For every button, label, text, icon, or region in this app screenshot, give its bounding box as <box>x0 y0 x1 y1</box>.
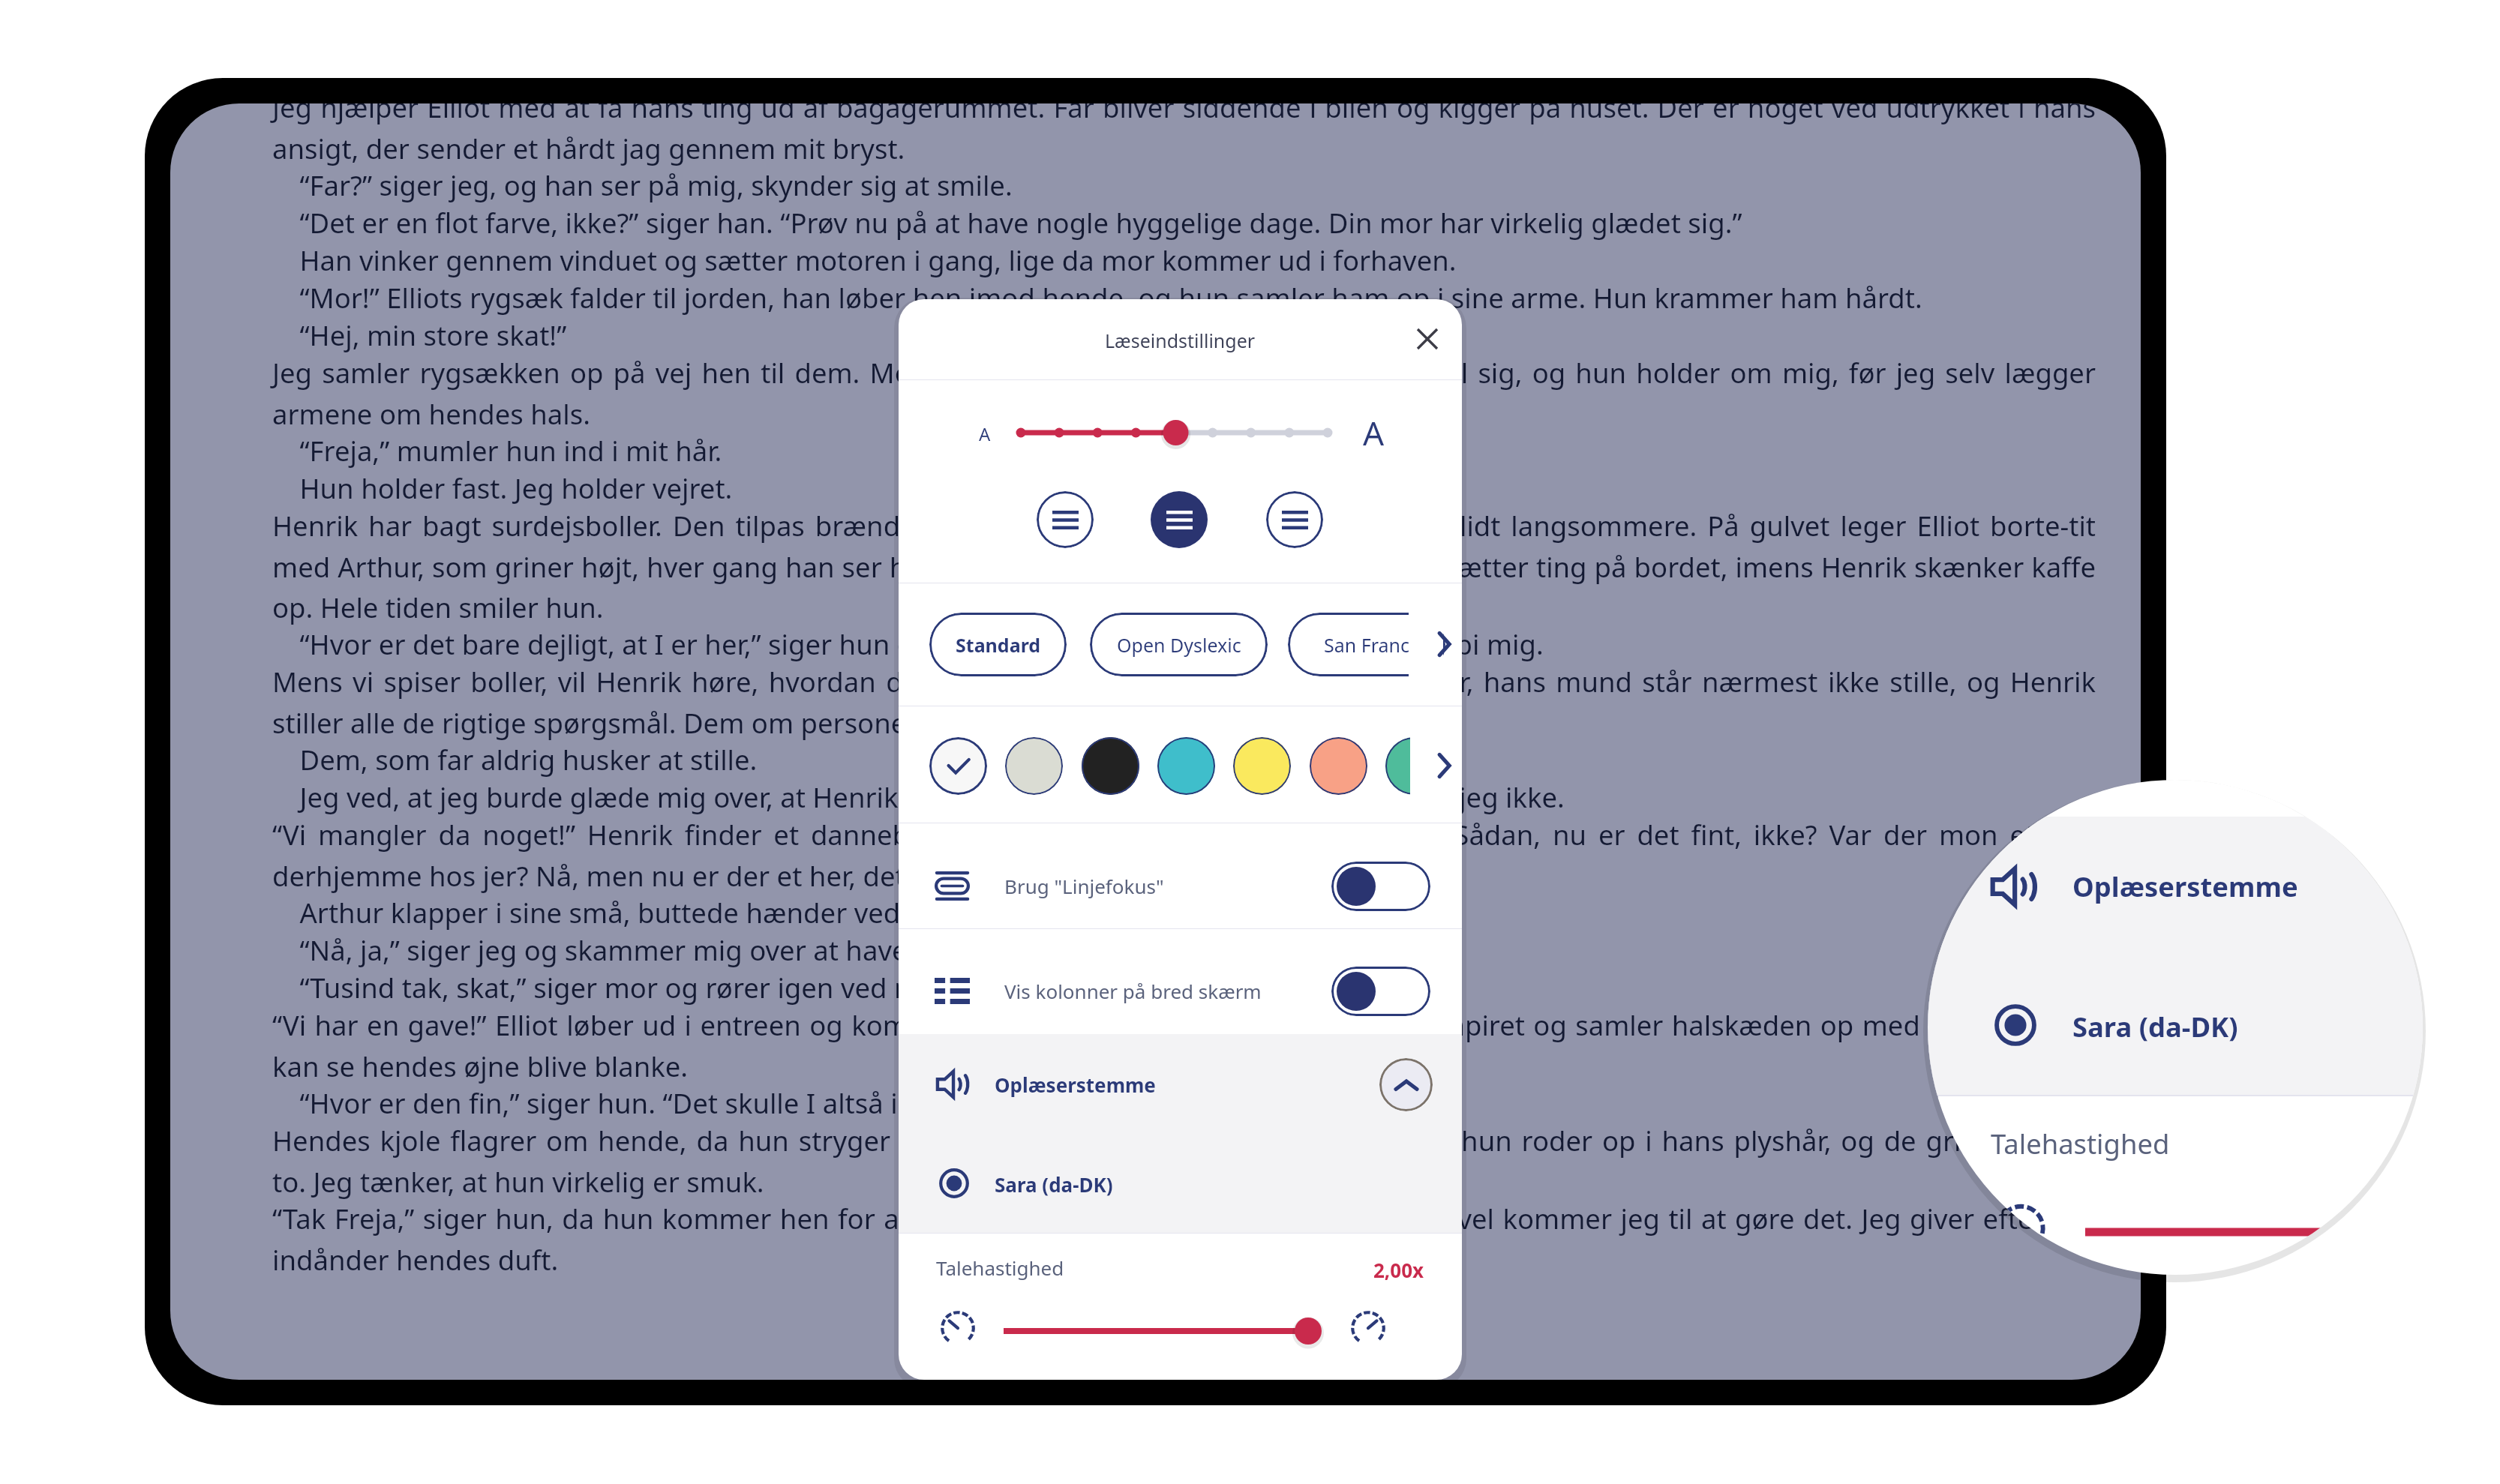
staticText: “Freja,” mumler hun ind i mit hår. <box>272 432 722 469</box>
staticText: “Mor!” Elliots rygsæk falder til jorden,… <box>272 279 1922 316</box>
button[interactable]: Vis flere <box>1427 749 1460 782</box>
staticText: “Hvor er den fin,” siger hun. “Det skull… <box>272 1084 1097 1122</box>
button[interactable]: Standard <box>929 613 1067 676</box>
button[interactable]: San Franc <box>1288 613 1445 676</box>
staticText: Vis kolonner på bred skærm <box>1004 978 1262 1004</box>
button[interactable]: Baggrundsfarve <box>929 737 987 795</box>
staticText: Sara (da-DK) <box>995 1171 1113 1198</box>
staticText: A <box>1363 410 1385 454</box>
staticText: A <box>979 421 991 446</box>
staticText: Henrik har bagt surdejsboller. Den tilpa… <box>272 507 2096 625</box>
button[interactable]: Centreret tekst <box>1151 491 1208 548</box>
staticText: 2,00x <box>1373 1257 1424 1283</box>
staticText: Jeg hjælper Elliot med at få hans ting u… <box>272 103 2096 166</box>
button[interactable]: Tekstjustering <box>1037 491 1094 548</box>
button[interactable]: Vis flere <box>1427 628 1460 661</box>
staticText: “Vi har en gave!” Elliot løber ud i entr… <box>272 1006 2096 1084</box>
button[interactable]: Slå til/fra <box>1331 862 1430 911</box>
button[interactable]: Baggrundsfarve <box>1310 737 1367 795</box>
staticText: Talehastighed <box>936 1255 1064 1281</box>
staticText: Hun holder fast. Jeg holder vejret. <box>272 469 733 507</box>
staticText: Han vinker gennem vinduet og sætter moto… <box>272 241 1457 279</box>
button[interactable] <box>1928 780 2423 815</box>
button[interactable]: Baggrundsfarve <box>1005 737 1063 795</box>
staticText: Mens vi spiser boller, vil Henrik høre, … <box>272 663 2096 741</box>
staticText: “Tusind tak, skat,” siger mor og rører i… <box>272 969 1289 1006</box>
staticText: San Franc <box>1324 632 1409 658</box>
button[interactable]: Luk <box>1403 314 1452 364</box>
button[interactable]: Baggrundsfarve <box>1233 737 1291 795</box>
button[interactable] <box>1928 817 2423 958</box>
staticText: “Hej, min store skat!” <box>272 316 567 354</box>
staticText: Standard <box>956 632 1041 658</box>
button[interactable]: Tekstjustering <box>1266 491 1323 548</box>
staticText: “Hvor er det bare dejligt, at I er her,”… <box>272 625 1544 663</box>
staticText: Brug "Linjefokus" <box>1004 873 1164 899</box>
staticText: Hendes kjole flagrer om hende, da hun st… <box>272 1122 2096 1200</box>
staticText: “Tak Freja,” siger hun, da hun kommer he… <box>272 1200 2096 1278</box>
staticText: Oplæserstemme <box>995 1072 1156 1098</box>
button[interactable] <box>899 949 1462 1033</box>
button[interactable] <box>899 844 1462 928</box>
staticText: Sara (da-DK) <box>2072 1008 2238 1045</box>
button[interactable]: Slå til/fra <box>1331 967 1430 1016</box>
button[interactable]: Jeg hjælper Elliot med at få hans ting u… <box>170 103 2141 1380</box>
button[interactable]: Baggrundsfarve <box>1157 737 1215 795</box>
button[interactable]: Baggrundsfarve <box>1082 737 1139 795</box>
staticText: Jeg ved, at jeg burde glæde mig over, at… <box>272 778 1565 816</box>
button[interactable] <box>899 1135 1462 1233</box>
staticText: Jeg samler rygsækken op på vej hen til d… <box>272 354 2096 432</box>
staticText: Oplæserstemme <box>2072 868 2298 905</box>
staticText: Talehastighed <box>1991 1125 2170 1162</box>
button[interactable]: Skjul oplæserstemme <box>1379 1058 1433 1111</box>
staticText: Open Dyslexic <box>1117 632 1241 658</box>
button[interactable] <box>1928 957 2423 1094</box>
staticText: “Det er en flot farve, ikke?” siger han.… <box>272 204 1742 241</box>
staticText: Dem, som far aldrig husker at stille. <box>272 741 758 778</box>
staticText: “Nå, ja,” siger jeg og skammer mig over … <box>272 931 1421 969</box>
button[interactable]: Baggrundsfarve <box>1385 737 1443 795</box>
staticText: Læseindstillinger <box>1105 328 1256 353</box>
staticText: Arthur klapper i sine små, buttede hænde… <box>272 894 1305 931</box>
staticText: “Far?” siger jeg, og han ser på mig, sky… <box>272 166 1013 204</box>
staticText: “Vi mangler da noget!” Henrik finder et … <box>272 816 2096 894</box>
button[interactable]: Open Dyslexic <box>1090 613 1268 676</box>
button[interactable] <box>899 1034 1462 1135</box>
